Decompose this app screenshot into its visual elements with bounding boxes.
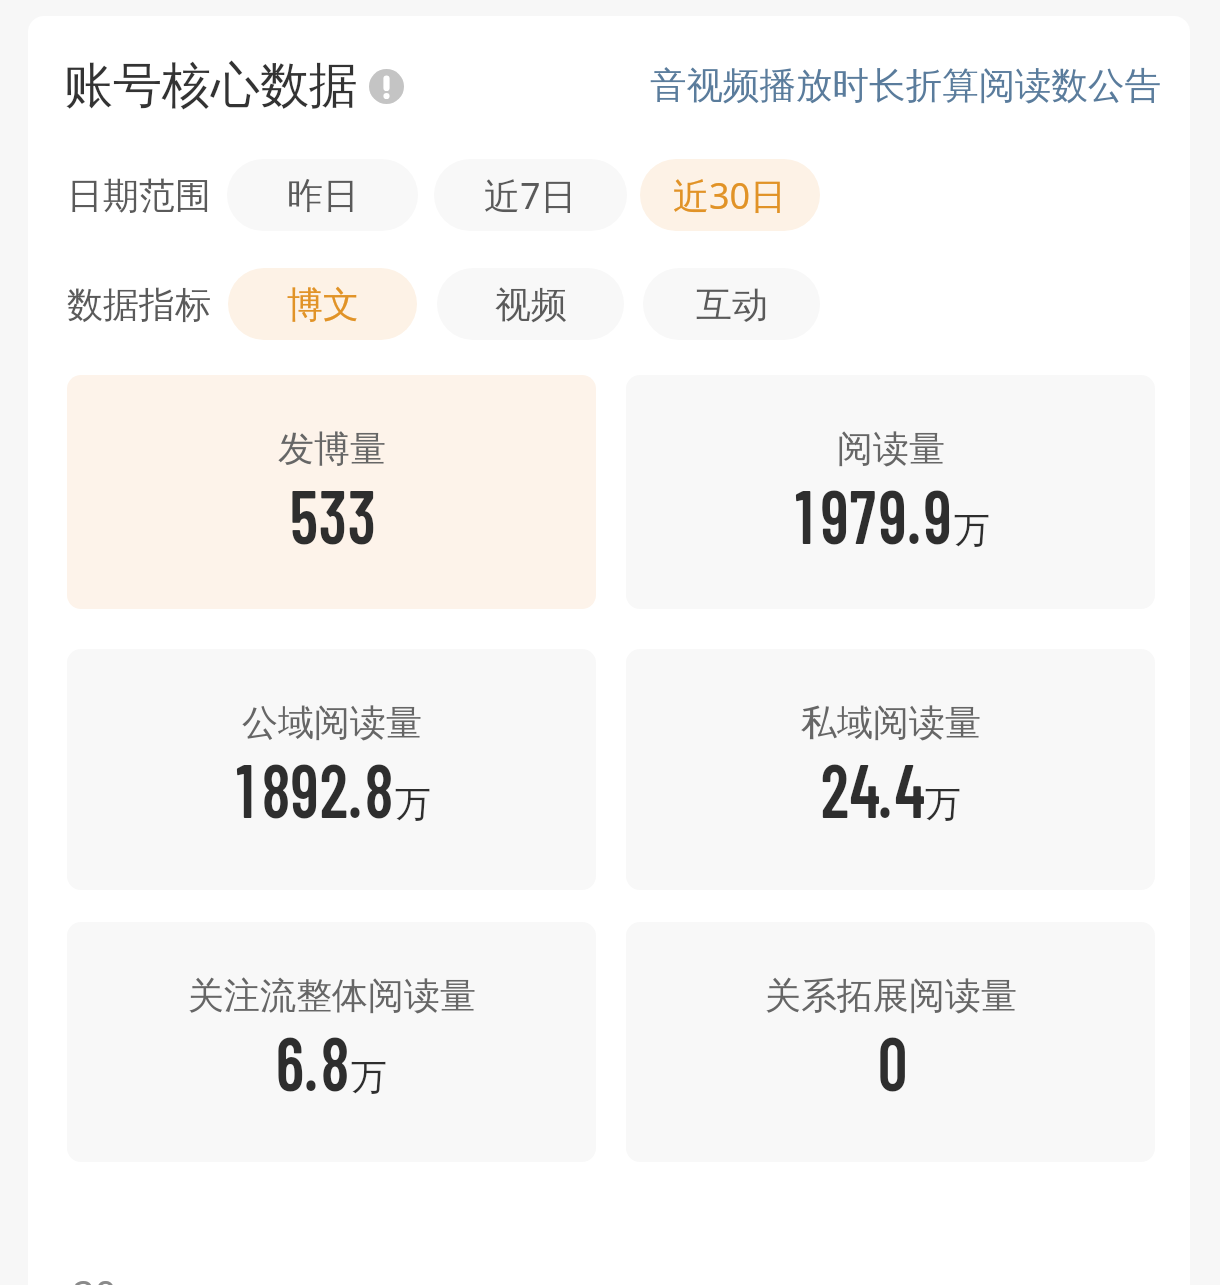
staticText: 2: [320, 743, 345, 833]
staticText: 1: [236, 743, 255, 833]
staticText: 视频: [495, 282, 567, 327]
staticText: 2: [821, 743, 846, 833]
button[interactable]: 昨日: [227, 159, 418, 231]
staticText: 6: [276, 1016, 301, 1106]
button[interactable]: 博文: [228, 268, 417, 340]
button[interactable]: 数据说明: [369, 69, 404, 104]
staticText: 3: [348, 469, 373, 559]
staticText: 0: [878, 1016, 903, 1106]
staticText: 7: [850, 469, 875, 559]
staticText: 万: [351, 1054, 387, 1099]
button[interactable]: 私域阅读量: [626, 649, 1155, 890]
staticText: 发博量: [278, 426, 386, 471]
staticText: .: [907, 469, 921, 559]
button[interactable]: 互动: [643, 268, 820, 340]
staticText: 4: [895, 743, 920, 833]
staticText: 3: [319, 469, 344, 559]
staticText: 音视频播放时长折算阅读数公告: [650, 63, 1161, 109]
staticText: 关系拓展阅读量: [765, 973, 1017, 1018]
staticText: 9: [821, 469, 846, 559]
staticText: 8: [262, 743, 287, 833]
staticText: 9: [291, 743, 316, 833]
staticText: .: [304, 1016, 318, 1106]
button[interactable]: 关注流整体阅读量: [67, 922, 596, 1162]
staticText: 万: [954, 507, 990, 552]
staticText: 9: [924, 469, 949, 559]
staticText: .: [348, 743, 362, 833]
staticText: 互动: [696, 282, 768, 327]
staticText: 账号核心数据: [64, 55, 358, 117]
staticText: 近7日: [484, 171, 577, 220]
staticText: 近30日: [673, 171, 787, 220]
staticText: 关注流整体阅读量: [188, 973, 476, 1018]
staticText: 私域阅读量: [801, 700, 981, 745]
staticText: 20: [73, 1267, 117, 1285]
staticText: 8: [321, 1016, 346, 1106]
staticText: 数据指标: [67, 282, 211, 327]
button[interactable]: 近30日: [640, 159, 820, 231]
staticText: 1: [795, 469, 814, 559]
button[interactable]: 关系拓展阅读量: [626, 922, 1155, 1162]
staticText: 博文: [287, 282, 359, 327]
button[interactable]: 发博量: [67, 375, 596, 609]
staticText: 阅读量: [837, 426, 945, 471]
staticText: 万: [395, 781, 431, 826]
button[interactable]: 视频: [437, 268, 624, 340]
staticText: 万: [925, 781, 961, 826]
staticText: 公域阅读量: [242, 700, 422, 745]
button[interactable]: 近7日: [434, 159, 627, 231]
staticText: 5: [290, 469, 315, 559]
staticText: 日期范围: [67, 173, 211, 218]
button[interactable]: 公域阅读量: [67, 649, 596, 890]
staticText: 4: [850, 743, 875, 833]
staticText: 昨日: [287, 173, 359, 218]
button[interactable]: 阅读量: [626, 375, 1155, 609]
staticText: 9: [879, 469, 904, 559]
staticText: .: [878, 743, 892, 833]
staticText: 8: [365, 743, 390, 833]
button[interactable]: 音视频播放时长折算阅读数公告: [650, 55, 1161, 117]
